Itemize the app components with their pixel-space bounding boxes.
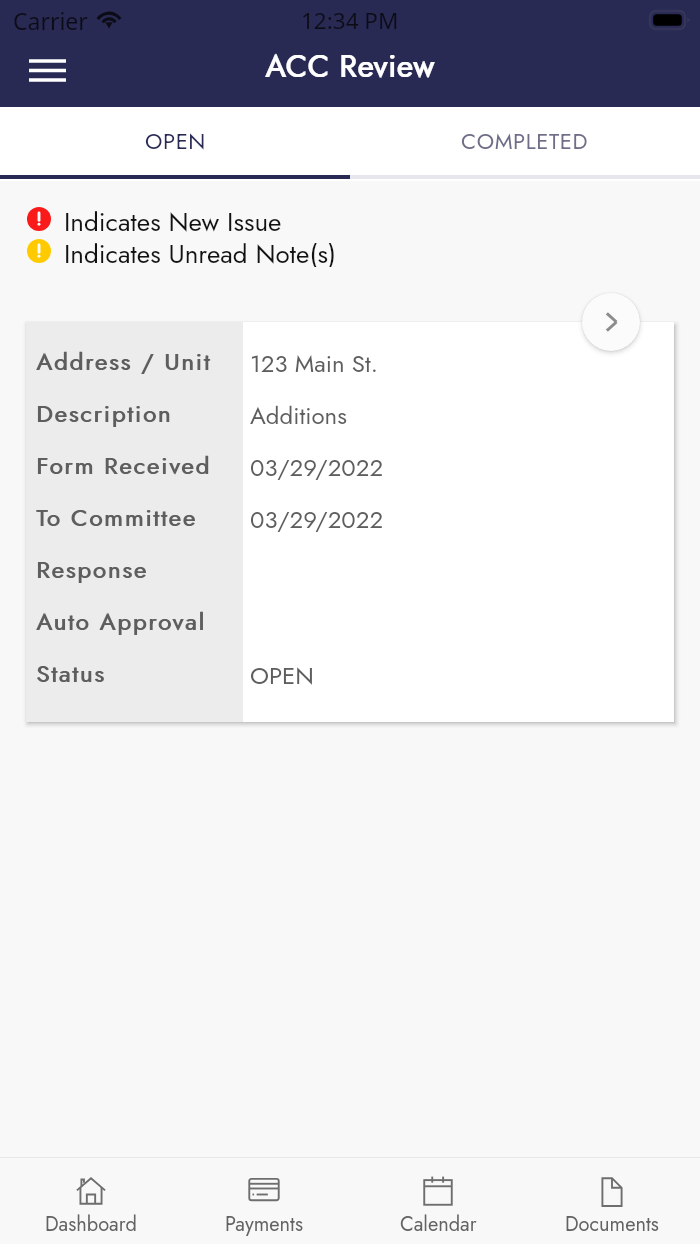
staticText: Calendar (400, 1210, 477, 1239)
staticText: Description (36, 396, 173, 431)
staticText: 03/29/2022 (250, 450, 384, 485)
staticText: COMPLETED (461, 125, 589, 157)
staticText: Response (37, 552, 149, 587)
button[interactable]: Documents (525, 1158, 699, 1244)
staticText: 12:34 PM (301, 5, 399, 36)
staticText: Additions (250, 398, 347, 433)
staticText: To Committee (36, 500, 197, 535)
staticText: Auto Approval (36, 604, 206, 639)
button[interactable]: Open request details (582, 293, 640, 351)
staticText: OPEN (250, 658, 314, 693)
staticText: Form Received (37, 448, 212, 483)
staticText: ACC Review (266, 44, 436, 89)
staticText: Carrier (13, 5, 88, 36)
staticText: Payments (225, 1210, 303, 1239)
staticText: Indicates Unread Note(s) (64, 235, 336, 267)
button[interactable]: Address / Unit (26, 322, 674, 722)
staticText: OPEN (145, 125, 206, 157)
staticText: Form Received (36, 448, 211, 483)
button[interactable]: Calendar (351, 1158, 525, 1244)
staticText: To Committee (37, 500, 198, 535)
button[interactable]: Dashboard (4, 1158, 177, 1244)
staticText: 03/29/2022 (250, 502, 384, 537)
button[interactable]: Payments (177, 1158, 351, 1244)
staticText: ACC Review (265, 44, 435, 89)
button[interactable]: COMPLETED (350, 107, 700, 175)
staticText: Indicates New Issue (64, 203, 282, 235)
staticText: Status (37, 656, 107, 691)
staticText: Description (37, 396, 174, 431)
staticText: Response (36, 552, 148, 587)
staticText: 123 Main St. (250, 346, 378, 381)
staticText: Documents (565, 1210, 659, 1239)
staticText: Auto Approval (37, 604, 207, 639)
button[interactable]: OPEN (0, 107, 350, 175)
staticText: Status (36, 656, 106, 691)
button[interactable]: Open navigation menu (12, 44, 82, 104)
staticText: Address / Unit (37, 344, 213, 379)
staticText: Address / Unit (36, 344, 212, 379)
staticText: Dashboard (45, 1210, 137, 1239)
